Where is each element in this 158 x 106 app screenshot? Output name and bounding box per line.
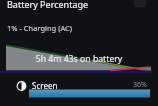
staticText: 5h 4m 43s on battery (0, 53, 158, 106)
button[interactable]: Screen (0, 79, 158, 106)
staticText: Screen (32, 80, 58, 91)
staticText: 36% (133, 80, 147, 90)
staticText: 1% - Charging (AC) (7, 23, 73, 33)
staticText: Battery Percentage (7, 0, 89, 10)
